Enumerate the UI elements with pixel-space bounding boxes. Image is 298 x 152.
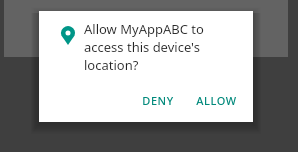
- staticText: access this device's: [84, 38, 200, 56]
- staticText: Allow MyAppABC to: [84, 20, 204, 38]
- button[interactable]: ALLOW: [188, 87, 245, 114]
- staticText: location?: [84, 56, 139, 74]
- staticText: ALLOW: [196, 93, 237, 108]
- other: Location: [61, 26, 75, 45]
- button[interactable]: DENY: [134, 87, 182, 114]
- staticText: DENY: [142, 93, 174, 108]
